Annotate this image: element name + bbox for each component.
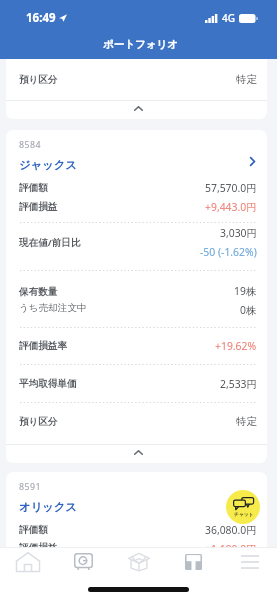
button[interactable]: 評価額 xyxy=(6,178,267,197)
staticText: 4G xyxy=(222,11,235,25)
staticText: 預り区分 xyxy=(19,416,58,428)
button[interactable]: メニュー xyxy=(222,546,277,577)
button[interactable]: 現在値/前日比 xyxy=(6,223,267,270)
staticText: 評価損益率 xyxy=(19,340,67,352)
staticText: 2,533円 xyxy=(220,377,257,391)
button[interactable]: 商品 xyxy=(111,546,166,577)
staticText: +1,180.0円 xyxy=(205,542,257,547)
staticText: 評価損益 xyxy=(19,542,58,547)
button[interactable]: 保有数量 xyxy=(6,271,267,327)
staticText: 8591 xyxy=(19,481,42,493)
staticText: チャット xyxy=(234,511,254,517)
button[interactable]: 預り区分 xyxy=(6,59,267,100)
staticText: 36,080.0円 xyxy=(205,523,257,537)
button[interactable]: ポートフォリオ xyxy=(166,546,221,577)
staticText: 16:49 xyxy=(26,10,56,26)
staticText: +9,443.0円 xyxy=(205,200,257,214)
staticText: 特定 xyxy=(236,415,257,428)
staticText: 評価損益 xyxy=(19,201,58,213)
staticText: 現在値/前日比 xyxy=(19,236,81,249)
staticText: ポートフォリオ xyxy=(103,38,178,51)
button[interactable]: 評価損益 xyxy=(6,539,267,547)
button[interactable]: 折りたたむ xyxy=(6,444,267,463)
staticText: 評価額 xyxy=(19,182,48,194)
staticText: 19株 xyxy=(234,284,257,298)
button[interactable]: 預り区分 xyxy=(6,403,267,444)
button[interactable]: 8584 xyxy=(6,130,267,178)
button[interactable]: 評価額 xyxy=(6,520,267,539)
staticText: オリックス xyxy=(19,500,77,514)
button[interactable]: 折りたたむ xyxy=(6,100,267,119)
staticText: 預り区分 xyxy=(19,74,58,86)
staticText: 3,030円 xyxy=(220,226,257,240)
staticText: +19.62% xyxy=(215,339,257,353)
staticText: 0株 xyxy=(240,303,257,317)
staticText: 特定 xyxy=(236,73,257,86)
staticText: 57,570.0円 xyxy=(205,181,257,195)
button[interactable]: 評価損益 xyxy=(6,197,267,216)
button[interactable]: 資産 xyxy=(56,546,111,577)
button[interactable]: ホーム xyxy=(0,546,55,577)
staticText: ジャックス xyxy=(19,158,77,172)
button[interactable]: チャット xyxy=(226,490,260,524)
staticText: 8584 xyxy=(19,139,42,151)
staticText: -50 (-1.62%) xyxy=(200,245,257,259)
staticText: うち売却注文中 xyxy=(19,302,87,314)
button[interactable]: 平均取得単価 xyxy=(6,365,267,402)
staticText: 評価額 xyxy=(19,524,48,536)
button[interactable]: 評価損益率 xyxy=(6,328,267,364)
staticText: 平均取得単価 xyxy=(19,378,77,390)
button[interactable]: 8591 xyxy=(6,472,267,520)
staticText: 保有数量 xyxy=(19,286,58,298)
